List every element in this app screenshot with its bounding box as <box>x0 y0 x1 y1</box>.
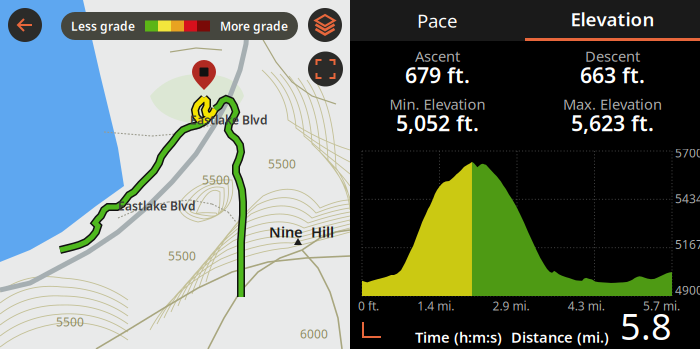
button[interactable]: Back <box>8 8 42 42</box>
staticText: 1.4 mi. <box>417 298 454 314</box>
button[interactable]: Expand map <box>308 51 343 87</box>
staticText: Eastlake Blvd <box>190 112 268 128</box>
staticText: 5700 <box>675 145 700 161</box>
staticText: Distance (mi.) <box>511 327 609 347</box>
staticText: 4.3 mi. <box>568 298 605 314</box>
staticText: 5500 <box>202 172 230 188</box>
staticText: 5.8 <box>620 302 672 349</box>
staticText: Elevation <box>570 7 654 31</box>
staticText: Min. Elevation <box>389 94 485 114</box>
staticText: 5500 <box>268 156 296 172</box>
staticText: 4900 <box>675 282 700 298</box>
staticText: Pace <box>417 8 458 33</box>
staticText: 2.9 mi. <box>492 298 529 314</box>
button[interactable]: Less grade <box>61 12 298 40</box>
staticText: Max. Elevation <box>563 94 662 114</box>
staticText: More grade <box>220 18 288 34</box>
staticText: Ascent <box>415 46 460 66</box>
staticText: 0 ft. <box>358 298 379 314</box>
button[interactable]: Pace <box>350 0 525 41</box>
staticText: Eastlake Blvd <box>118 198 196 214</box>
staticText: 5500 <box>56 314 84 330</box>
staticText: 6000 <box>300 326 328 342</box>
staticText: Less grade <box>71 18 135 34</box>
staticText: 5167 <box>675 236 700 252</box>
staticText: 5434 <box>675 191 700 207</box>
button[interactable]: Elevation <box>525 0 700 41</box>
button[interactable]: Map layers <box>308 8 342 42</box>
staticText: Time (h:m:s) <box>415 327 502 347</box>
staticText: 663 ft. <box>580 61 645 89</box>
staticText: 679 ft. <box>405 61 470 89</box>
staticText: 5,623 ft. <box>571 109 654 137</box>
staticText: 5,052 ft. <box>396 109 479 137</box>
staticText: Descent <box>585 46 640 66</box>
staticText: 5.7 mi. <box>643 298 680 314</box>
staticText: Nine Hill <box>269 222 334 241</box>
staticText: 5500 <box>168 248 196 264</box>
button[interactable]: Chart type <box>362 322 382 339</box>
